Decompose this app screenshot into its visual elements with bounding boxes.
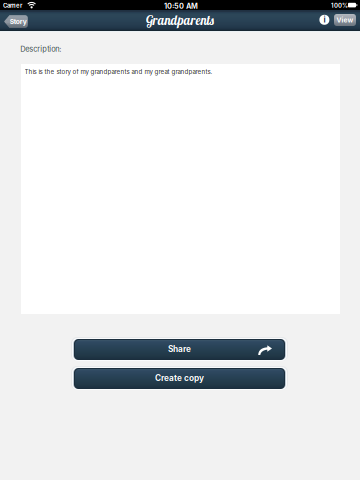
staticText: View xyxy=(336,16,353,24)
staticText: Share xyxy=(168,344,191,354)
staticText: Description: xyxy=(20,44,61,53)
staticText: 100% xyxy=(331,2,348,9)
button[interactable]: Info xyxy=(319,15,329,25)
button[interactable]: Create copy xyxy=(71,366,288,390)
staticText: Story xyxy=(10,18,27,26)
staticText: This is the story of my grandparents and… xyxy=(25,68,213,75)
staticText: Grandparents xyxy=(145,12,214,28)
button[interactable]: View xyxy=(334,14,356,26)
staticText: i xyxy=(323,15,325,24)
button[interactable]: Story xyxy=(4,15,28,28)
button[interactable]: Share xyxy=(71,337,288,361)
staticText: 10:50 AM xyxy=(164,2,198,10)
staticText: Carrier xyxy=(3,2,22,9)
staticText: Create copy xyxy=(155,373,204,383)
